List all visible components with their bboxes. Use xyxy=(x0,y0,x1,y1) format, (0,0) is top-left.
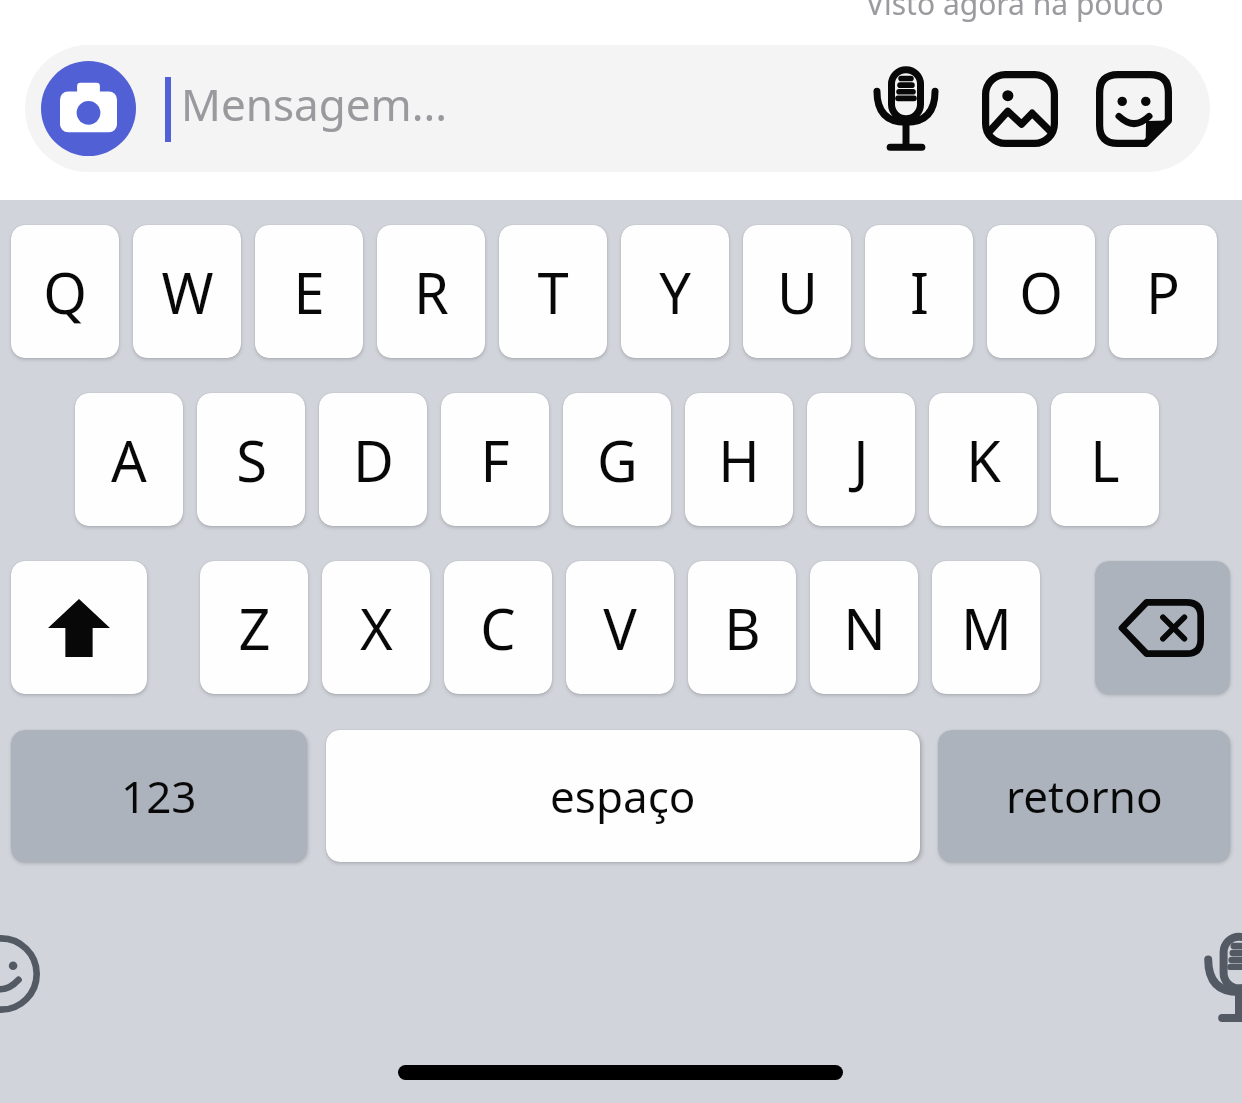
button[interactable]: D xyxy=(319,393,427,526)
staticText: L xyxy=(1090,422,1120,498)
button[interactable]: W xyxy=(133,225,241,358)
staticText: E xyxy=(293,254,325,330)
button[interactable]: F xyxy=(441,393,549,526)
button[interactable]: M xyxy=(932,561,1040,694)
button[interactable]: L xyxy=(1051,393,1159,526)
button[interactable]: S xyxy=(197,393,305,526)
staticText: D xyxy=(353,422,394,498)
staticText: R xyxy=(414,254,449,330)
button[interactable]: Figurinhas xyxy=(1087,67,1181,151)
button[interactable]: retorno xyxy=(938,730,1230,862)
button[interactable]: Emoji xyxy=(0,935,40,1013)
button[interactable]: Câmera xyxy=(41,61,136,156)
button[interactable]: R xyxy=(377,225,485,358)
staticText: Q xyxy=(43,254,87,330)
staticText: K xyxy=(966,422,1001,498)
staticText: 123 xyxy=(121,766,197,826)
button[interactable]: O xyxy=(987,225,1095,358)
staticText: Z xyxy=(238,590,271,666)
button[interactable]: Gravar áudio xyxy=(859,67,953,151)
staticText: V xyxy=(603,590,637,666)
button[interactable]: X xyxy=(322,561,430,694)
staticText: espaço xyxy=(550,766,696,826)
staticText: B xyxy=(724,590,761,666)
staticText: O xyxy=(1019,254,1063,330)
staticText: T xyxy=(537,254,569,330)
staticText: Mensagem... xyxy=(181,74,448,134)
staticText: I xyxy=(910,254,929,330)
staticText: A xyxy=(111,422,147,498)
button[interactable]: I xyxy=(865,225,973,358)
staticText: W xyxy=(161,254,214,330)
staticText: Visto agora há pouco xyxy=(866,0,1164,24)
button[interactable]: Apagar xyxy=(1095,561,1230,694)
button[interactable]: K xyxy=(929,393,1037,526)
button[interactable]: 123 xyxy=(11,730,307,862)
button[interactable]: Z xyxy=(200,561,308,694)
staticText: C xyxy=(480,590,516,666)
button[interactable]: H xyxy=(685,393,793,526)
button[interactable]: A xyxy=(75,393,183,526)
button[interactable]: E xyxy=(255,225,363,358)
staticText: J xyxy=(853,422,869,498)
staticText: H xyxy=(718,422,760,498)
button[interactable]: Q xyxy=(11,225,119,358)
button[interactable]: Y xyxy=(621,225,729,358)
staticText: X xyxy=(360,590,393,666)
button[interactable]: J xyxy=(807,393,915,526)
staticText: M xyxy=(961,590,1012,666)
button[interactable]: Ditado xyxy=(1204,935,1242,1021)
staticText: G xyxy=(597,422,638,498)
staticText: P xyxy=(1146,254,1180,330)
button[interactable]: T xyxy=(499,225,607,358)
button[interactable]: espaço xyxy=(326,730,920,862)
staticText: retorno xyxy=(1006,766,1163,826)
button[interactable]: C xyxy=(444,561,552,694)
staticText: Y xyxy=(659,254,691,330)
staticText: S xyxy=(236,422,267,498)
button[interactable]: N xyxy=(810,561,918,694)
button[interactable]: P xyxy=(1109,225,1217,358)
button[interactable]: V xyxy=(566,561,674,694)
button[interactable]: G xyxy=(563,393,671,526)
button[interactable]: Shift xyxy=(11,561,147,694)
staticText: U xyxy=(777,254,818,330)
staticText: N xyxy=(843,590,886,666)
button[interactable]: B xyxy=(688,561,796,694)
staticText: F xyxy=(480,422,510,498)
button[interactable]: U xyxy=(743,225,851,358)
button[interactable]: Galeria xyxy=(973,67,1067,151)
